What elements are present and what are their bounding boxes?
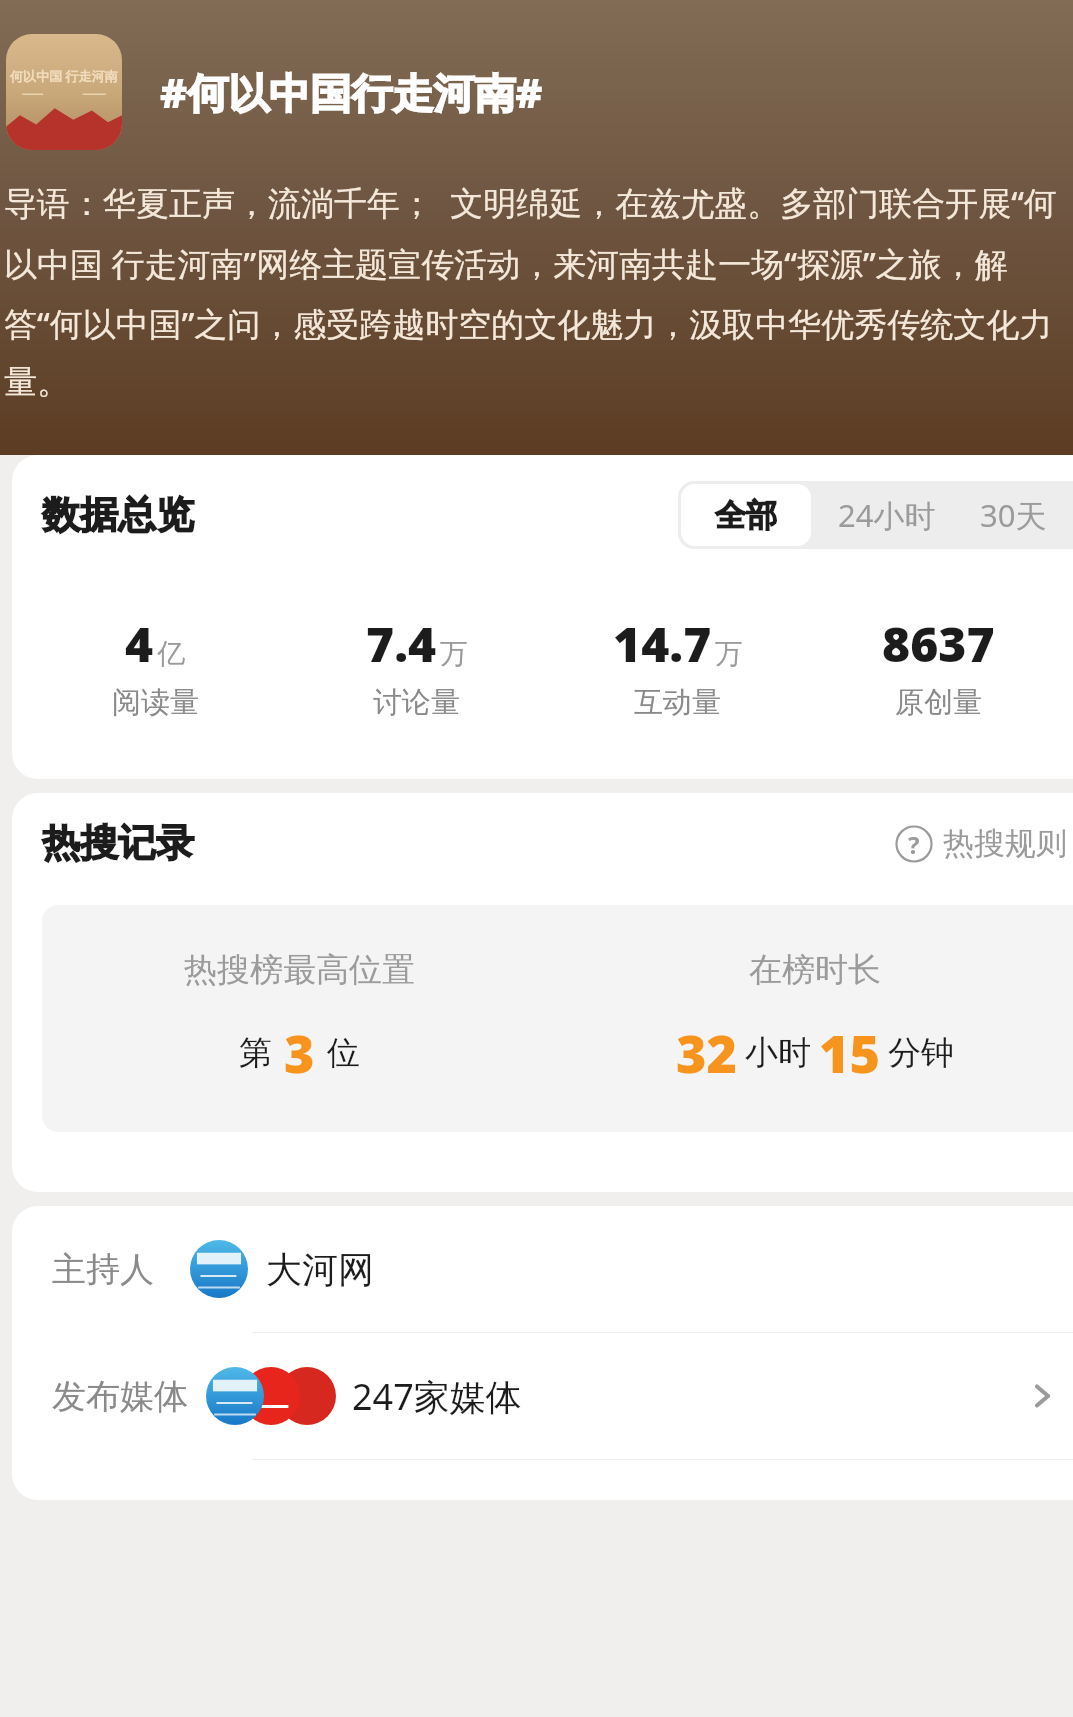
- button[interactable]: 主持人: [12, 1206, 1073, 1332]
- staticText: 数据总览: [42, 491, 194, 539]
- staticText: 万: [440, 636, 468, 671]
- staticText: 导语：华夏正声，流淌千年； 文明绵延，在兹尤盛。多部门联合开展“何以中国 行走河…: [4, 180, 1073, 403]
- staticText: 247家媒体: [352, 1372, 522, 1421]
- staticText: 热搜记录: [42, 819, 194, 867]
- staticText: 7.4: [366, 611, 437, 676]
- staticText: 万: [715, 636, 743, 671]
- staticText: ?: [908, 828, 920, 861]
- staticText: 主持人: [52, 1248, 154, 1291]
- staticText: 14.7: [613, 611, 712, 676]
- button[interactable]: 30天: [960, 481, 1073, 549]
- staticText: 热搜榜最高位置: [184, 949, 415, 991]
- staticText: 位: [327, 1032, 360, 1074]
- staticText: 原创量: [895, 684, 982, 721]
- button[interactable]: 发布媒体: [12, 1333, 1073, 1459]
- staticText: 在榜时长: [749, 949, 881, 991]
- staticText: 发布媒体: [52, 1375, 188, 1418]
- staticText: 讨论量: [373, 684, 460, 721]
- staticText: 何以中国 行走河南: [10, 67, 118, 85]
- staticText: 全部: [715, 496, 777, 535]
- staticText: 阅读量: [112, 684, 199, 721]
- staticText: #何以中国行走河南#: [160, 64, 543, 120]
- staticText: 互动量: [634, 684, 721, 721]
- staticText: 4: [125, 611, 154, 676]
- staticText: 第: [239, 1032, 272, 1074]
- button[interactable]: 话题图标: [6, 34, 122, 150]
- staticText: 24小时: [838, 494, 936, 536]
- staticText: 小时: [745, 1032, 811, 1074]
- staticText: 分钟: [888, 1032, 954, 1074]
- staticText: 8637: [882, 611, 995, 676]
- other: 查看全部媒体: [1025, 1379, 1059, 1413]
- button[interactable]: ?: [895, 824, 1073, 863]
- button[interactable]: 全部: [681, 484, 811, 546]
- staticText: 亿: [157, 636, 185, 671]
- button[interactable]: 24小时: [814, 481, 960, 549]
- staticText: 30天: [980, 494, 1047, 536]
- staticText: 大河网: [266, 1247, 374, 1292]
- staticText: 15: [819, 1017, 880, 1088]
- staticText: 3: [284, 1017, 315, 1088]
- staticText: 热搜规则: [943, 824, 1067, 863]
- staticText: 32: [676, 1017, 737, 1088]
